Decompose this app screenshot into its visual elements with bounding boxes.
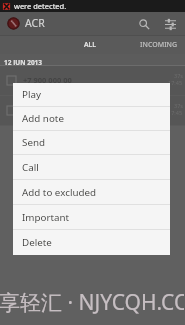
button[interactable]: +7 900 000 00 xyxy=(0,96,185,125)
staticText: 17:45 xyxy=(168,79,183,86)
staticText: 37s xyxy=(174,102,183,109)
staticText: Play xyxy=(22,88,41,101)
button[interactable]: Add to excluded xyxy=(13,180,170,205)
staticText: ACR xyxy=(25,16,45,30)
button[interactable]: Play xyxy=(13,83,170,107)
button[interactable]: Filter settings xyxy=(162,16,178,32)
staticText: INCOMING xyxy=(140,40,178,50)
button[interactable]: +7 900 000 00 xyxy=(0,66,185,95)
staticText: were detected. xyxy=(14,1,67,11)
staticText: Send xyxy=(22,136,45,149)
staticText: Important xyxy=(22,211,70,224)
staticText: +7 900 000 00 xyxy=(23,75,72,85)
staticText: 37s xyxy=(174,72,183,79)
staticText: 17:45 xyxy=(168,109,183,116)
button[interactable]: Delete xyxy=(13,230,170,255)
button[interactable]: Call xyxy=(13,155,170,180)
staticText: ALL xyxy=(84,40,97,50)
staticText: Delete xyxy=(22,236,52,249)
button[interactable]: ALL xyxy=(62,35,119,54)
staticText: Add to excluded xyxy=(22,186,97,199)
button[interactable]: Send xyxy=(13,131,170,155)
staticText: Call xyxy=(22,161,39,174)
button[interactable]: Add note xyxy=(13,107,170,131)
button[interactable]: Important xyxy=(13,205,170,230)
staticText: 享轻汇 · NJYCQH.CO xyxy=(0,288,184,317)
staticText: +7 900 000 00 xyxy=(23,105,72,115)
staticText: Add note xyxy=(22,112,64,125)
button[interactable]: Search xyxy=(136,16,152,32)
button[interactable]: INCOMING xyxy=(133,35,185,54)
staticText: 12 JUN 2013 xyxy=(4,58,43,66)
